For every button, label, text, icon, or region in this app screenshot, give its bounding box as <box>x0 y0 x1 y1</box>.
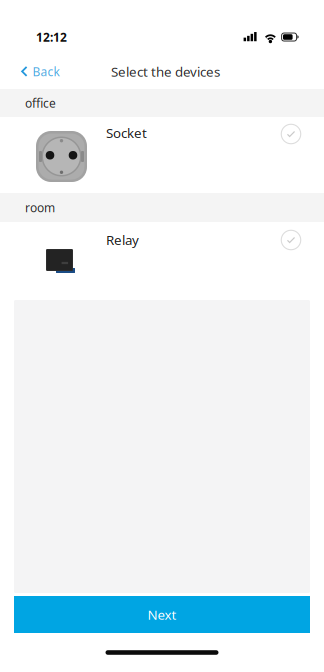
button[interactable]: Back <box>0 54 72 89</box>
staticText: room <box>25 199 55 215</box>
button[interactable]: Socket <box>0 117 324 193</box>
button[interactable]: Next <box>14 596 310 633</box>
staticText: office <box>25 95 56 111</box>
staticText: Socket <box>106 124 147 142</box>
staticText: 12:12 <box>36 29 67 45</box>
staticText: Next <box>147 606 176 623</box>
staticText: Back <box>33 63 60 79</box>
staticText: Select the devices <box>111 63 220 80</box>
button[interactable]: Relay <box>0 222 324 299</box>
staticText: Relay <box>106 231 139 249</box>
